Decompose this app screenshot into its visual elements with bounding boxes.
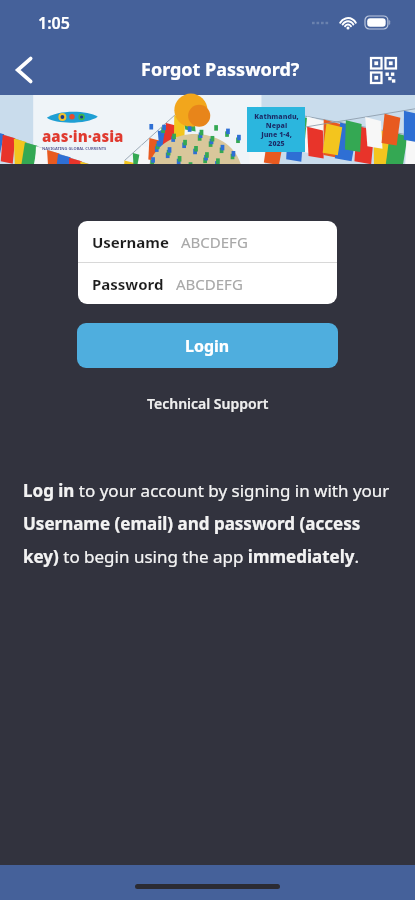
button[interactable]: Technical Support [135,390,281,417]
staticText: Kathmandu, Nepal June 1-4, 2025 [254,112,299,148]
staticText: Password [92,274,164,294]
staticText: Login [185,335,230,357]
button[interactable]: Back [0,46,48,94]
staticText: ABCDEFG [176,274,243,294]
button[interactable]: Scan QR code [361,48,405,92]
button[interactable]: Password [78,263,337,304]
staticText: NAVIGATING GLOBAL CURRENTS [42,146,107,151]
staticText: Technical Support [147,394,269,413]
button[interactable]: Login [77,323,338,368]
staticText: Username [92,232,169,252]
staticText: Log in to your account by signing in wit… [23,479,393,568]
staticText: Forgot Password? [141,57,300,82]
staticText: 1:05 [38,12,70,34]
staticText: aas·in·asia [42,126,124,146]
staticText: ABCDEFG [181,232,248,252]
button[interactable]: aas·in·asia [0,95,415,164]
button[interactable]: Username [78,221,337,262]
